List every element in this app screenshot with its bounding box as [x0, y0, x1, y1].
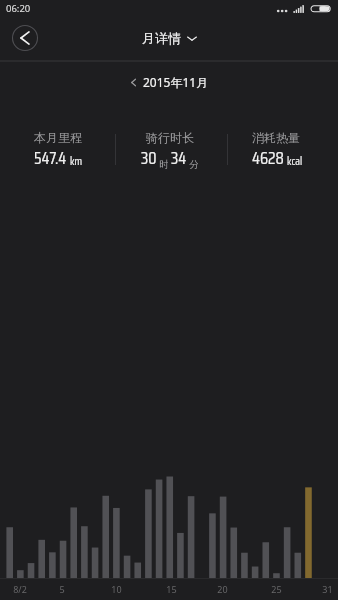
staticText: km: [70, 153, 83, 170]
button[interactable]: 月详情: [142, 30, 197, 46]
staticText: 5: [59, 583, 65, 595]
staticText: 月详情: [142, 30, 181, 46]
staticText: 分: [189, 158, 198, 169]
staticText: 8/2: [13, 583, 27, 595]
staticText: 4628: [252, 145, 284, 172]
staticText: 2015年11月: [143, 74, 209, 90]
staticText: 15: [166, 583, 177, 595]
staticText: 30: [141, 145, 157, 172]
staticText: 消耗热量: [252, 130, 300, 145]
staticText: 本月里程: [34, 130, 82, 145]
staticText: 骑行时长: [146, 130, 194, 145]
staticText: 时: [159, 158, 168, 169]
staticText: 06:20: [6, 2, 31, 15]
staticText: 31: [322, 583, 333, 595]
staticText: kcal: [287, 153, 303, 170]
staticText: 34: [171, 145, 187, 172]
button[interactable]: Back: [11, 24, 39, 52]
staticText: 25: [271, 583, 282, 595]
staticText: 20: [217, 583, 228, 595]
button[interactable]: 2015年11月: [130, 74, 209, 90]
staticText: 10: [111, 583, 122, 595]
staticText: 547.4: [34, 145, 67, 172]
